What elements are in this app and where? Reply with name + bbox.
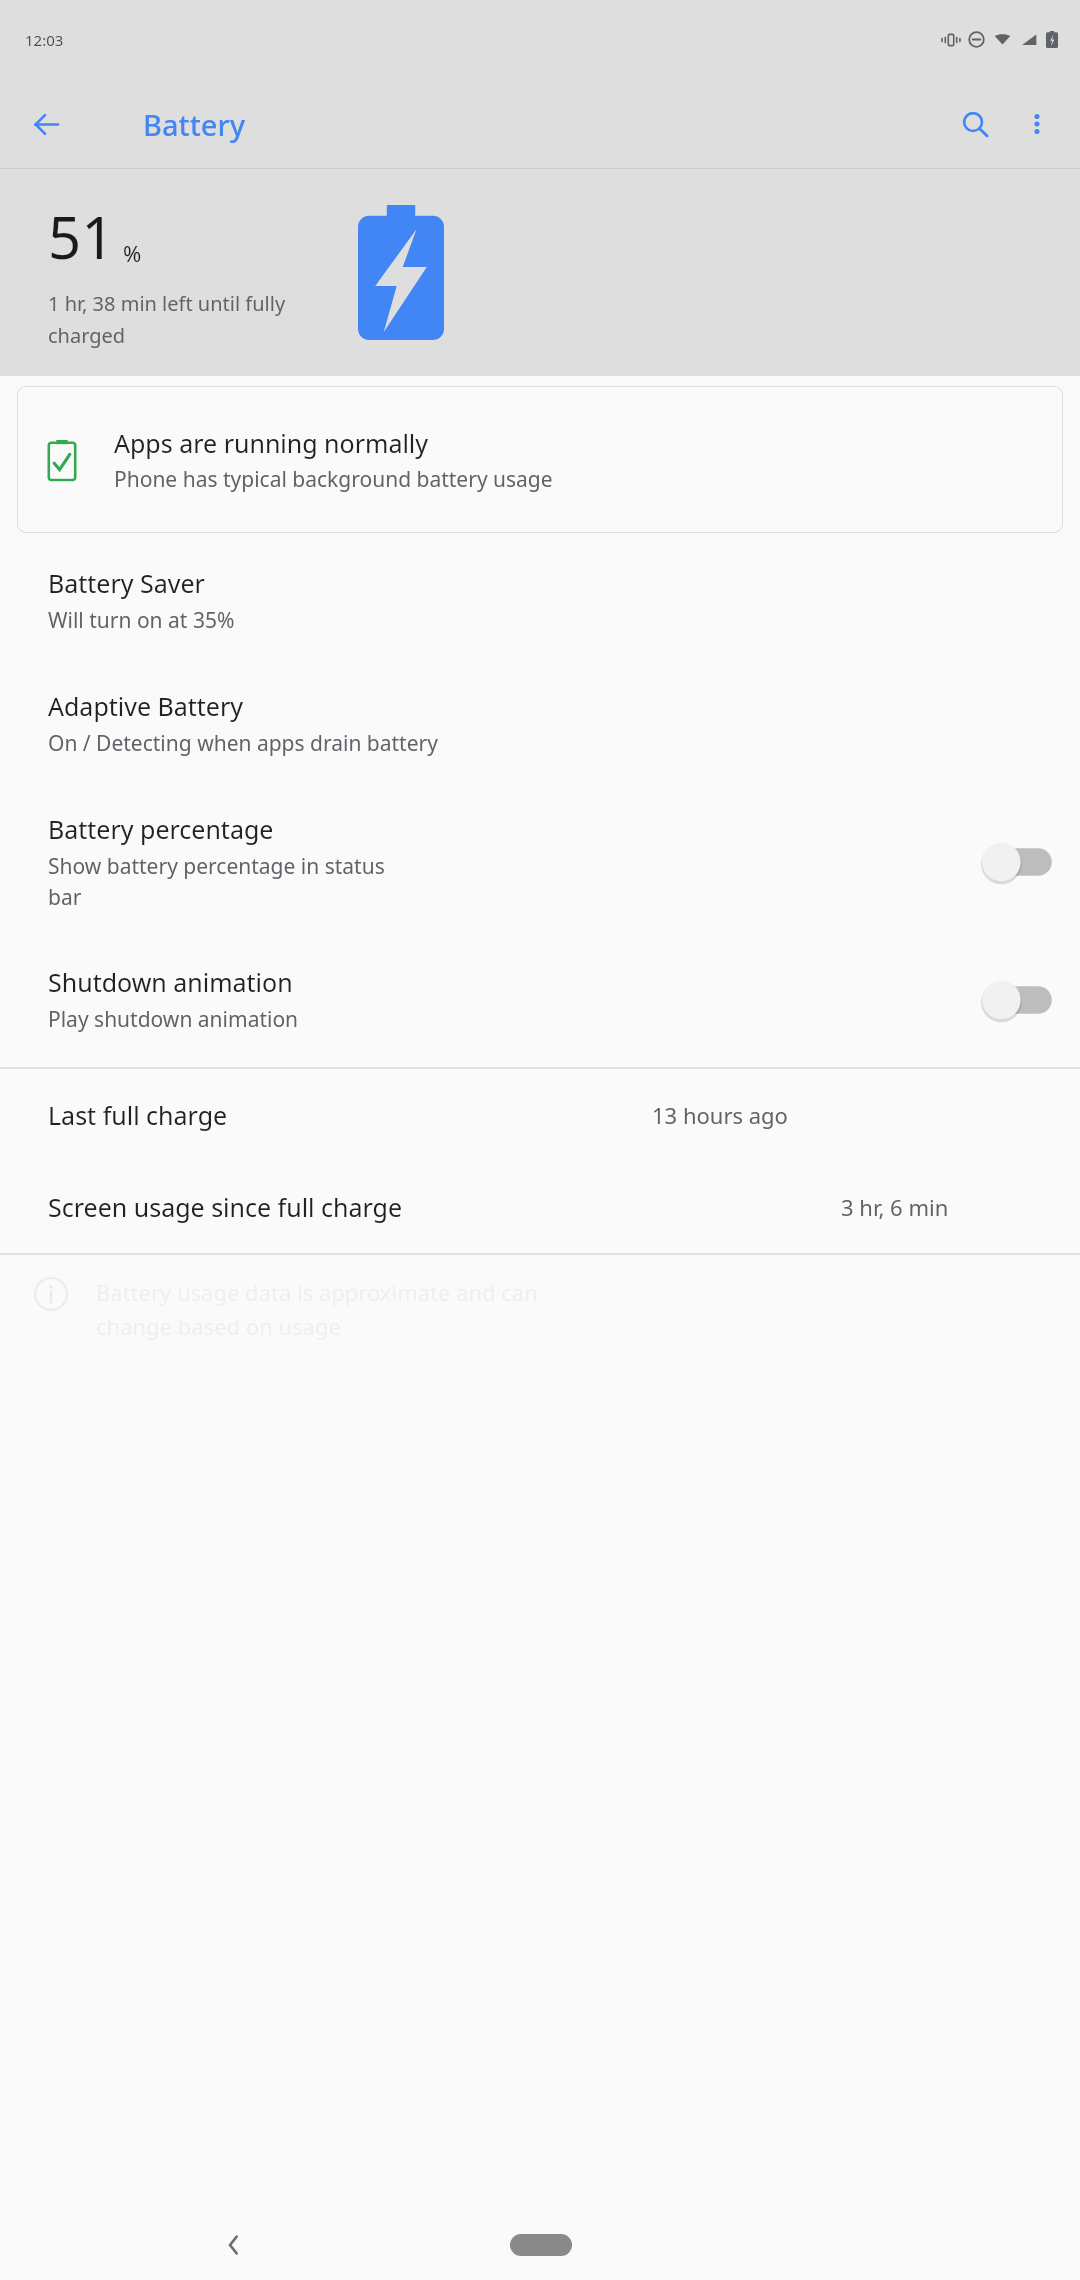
staticText: Last full charge: [48, 1098, 228, 1132]
button[interactable]: Home: [510, 2234, 572, 2256]
staticText: Show battery percentage in status bar: [48, 852, 385, 911]
button[interactable]: Battery Saver: [0, 539, 1080, 662]
staticText: On / Detecting when apps drain battery: [48, 729, 438, 758]
button[interactable]: Toggle: [980, 839, 1058, 885]
button[interactable]: Search: [944, 93, 1006, 155]
button[interactable]: Screen usage since full charge: [0, 1161, 1080, 1253]
button[interactable]: Battery percentage: [0, 785, 1080, 938]
button[interactable]: Apps are running normally: [17, 386, 1063, 533]
button[interactable]: Back: [18, 96, 74, 152]
staticText: %: [123, 238, 142, 268]
staticText: Phone has typical background battery usa…: [114, 465, 553, 494]
staticText: Will turn on at 35%: [48, 606, 235, 635]
button[interactable]: Back: [210, 2221, 258, 2269]
staticText: Play shutdown animation: [48, 1005, 299, 1034]
button[interactable]: Adaptive Battery: [0, 662, 1080, 785]
button[interactable]: Shutdown animation: [0, 938, 1080, 1061]
staticText: 12:03: [25, 30, 64, 50]
staticText: 13 hours ago: [652, 1100, 788, 1130]
staticText: Shutdown animation: [48, 965, 293, 999]
staticText: Apps are running normally: [114, 426, 429, 460]
staticText: Adaptive Battery: [48, 689, 244, 723]
button[interactable]: More options: [1006, 93, 1068, 155]
staticText: Battery: [143, 105, 245, 144]
staticText: Battery usage data is approximate and ca…: [96, 1277, 538, 1341]
staticText: Battery percentage: [48, 812, 274, 846]
staticText: 1 hr, 38 min left until fully charged: [48, 290, 286, 349]
staticText: 51: [48, 197, 115, 276]
button[interactable]: Last full charge: [0, 1069, 1080, 1161]
staticText: Battery Saver: [48, 566, 205, 600]
button[interactable]: Toggle: [980, 977, 1058, 1023]
staticText: 3 hr, 6 min: [841, 1192, 949, 1222]
staticText: Screen usage since full charge: [48, 1190, 403, 1224]
